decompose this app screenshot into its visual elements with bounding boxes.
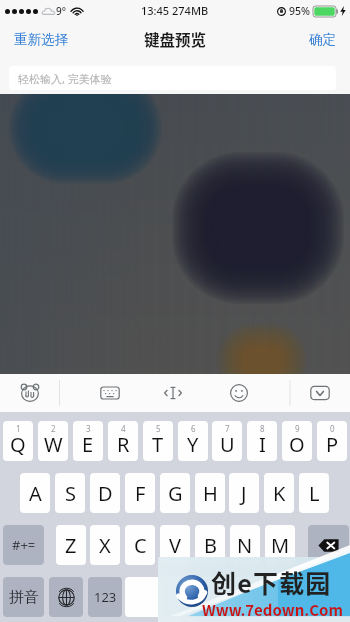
staticText: Z: [65, 532, 77, 559]
staticText: T: [152, 431, 164, 458]
button[interactable]: 1: [3, 421, 33, 461]
button[interactable]: G: [160, 473, 190, 513]
staticText: 6: [191, 423, 196, 434]
button[interactable]: 重新选择: [0, 31, 76, 48]
staticText: 8: [260, 423, 265, 434]
staticText: E: [82, 431, 94, 458]
staticText: B: [204, 532, 217, 559]
button[interactable]: Keyboard layout: [92, 375, 128, 411]
staticText: O: [289, 431, 305, 458]
staticText: 0: [330, 423, 335, 434]
staticText: #+=: [12, 536, 36, 554]
staticText: R: [117, 431, 130, 458]
staticText: L: [309, 480, 320, 507]
staticText: C: [134, 532, 147, 559]
button[interactable]: Baidu input method: [12, 375, 48, 411]
button[interactable]: S: [55, 473, 85, 513]
button[interactable]: F: [125, 473, 155, 513]
button[interactable]: H: [195, 473, 225, 513]
staticText: V: [169, 532, 181, 559]
button[interactable]: C: [125, 525, 155, 565]
staticText: A: [29, 480, 42, 507]
staticText: Www.7edown.Com: [202, 599, 343, 621]
staticText: 13:45 274MB: [141, 3, 209, 18]
staticText: 创e下载园: [211, 564, 332, 600]
staticText: 95%: [289, 4, 310, 18]
button[interactable]: Hide keyboard: [302, 375, 338, 411]
button[interactable]: 拼音: [3, 577, 44, 617]
button[interactable]: 3: [73, 421, 103, 461]
button[interactable]: Space: [125, 577, 307, 617]
staticText: N: [237, 532, 253, 559]
staticText: 4: [121, 423, 126, 434]
staticText: D: [98, 480, 113, 507]
button[interactable]: 9: [282, 421, 312, 461]
button[interactable]: X: [90, 525, 120, 565]
button[interactable]: Backspace: [308, 525, 349, 565]
button[interactable]: Switch language: [49, 577, 83, 617]
staticText: 5: [156, 423, 161, 434]
button[interactable]: 6: [178, 421, 208, 461]
staticText: 3: [86, 423, 91, 434]
button[interactable]: Z: [56, 525, 86, 565]
staticText: Q: [10, 431, 26, 458]
button[interactable]: N: [230, 525, 260, 565]
button[interactable]: V: [160, 525, 190, 565]
button[interactable]: J: [229, 473, 259, 513]
staticText: H: [203, 480, 218, 507]
button[interactable]: 轻松输入, 完美体验: [9, 66, 336, 90]
staticText: W: [44, 431, 63, 458]
staticText: 9°: [56, 4, 66, 18]
staticText: U: [220, 431, 235, 458]
staticText: M: [271, 532, 290, 559]
button[interactable]: 4: [108, 421, 138, 461]
button[interactable]: 2: [38, 421, 68, 461]
button[interactable]: 123: [88, 577, 122, 617]
staticText: S: [65, 480, 76, 507]
staticText: 轻松输入, 完美体验: [18, 71, 112, 86]
button[interactable]: [309, 577, 349, 617]
staticText: Y: [187, 431, 199, 458]
button[interactable]: M: [265, 525, 295, 565]
button[interactable]: Cursor: [155, 375, 191, 411]
button[interactable]: 7: [212, 421, 242, 461]
staticText: X: [99, 532, 111, 559]
button[interactable]: L: [299, 473, 329, 513]
button[interactable]: 0: [317, 421, 347, 461]
button[interactable]: 5: [143, 421, 173, 461]
button[interactable]: 8: [247, 421, 277, 461]
button[interactable]: A: [20, 473, 50, 513]
button[interactable]: K: [264, 473, 294, 513]
staticText: 键盘预览: [144, 28, 207, 50]
button[interactable]: B: [195, 525, 225, 565]
staticText: I: [259, 431, 266, 458]
staticText: P: [326, 431, 339, 458]
staticText: 1: [16, 423, 21, 434]
staticText: G: [168, 480, 183, 507]
staticText: K: [273, 480, 286, 507]
button[interactable]: #+=: [3, 525, 44, 565]
button[interactable]: Emoji: [221, 375, 257, 411]
staticText: 7: [225, 423, 230, 434]
staticText: 123: [94, 588, 117, 606]
staticText: 2: [51, 423, 56, 434]
staticText: J: [241, 480, 247, 507]
button[interactable]: D: [90, 473, 120, 513]
staticText: F: [135, 480, 146, 507]
staticText: 9: [295, 423, 300, 434]
button[interactable]: 确定: [301, 31, 350, 48]
staticText: 拼音: [9, 588, 39, 607]
